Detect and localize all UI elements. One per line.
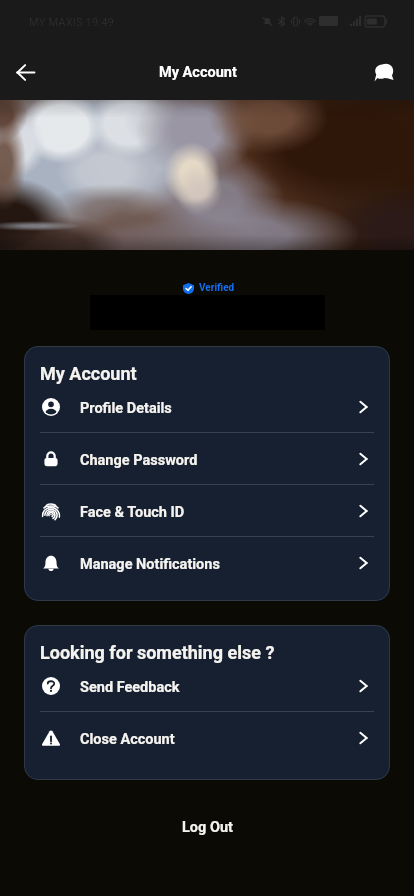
button[interactable]: Change Password [24,433,390,484]
staticText: My Account [159,64,237,81]
staticText: My Account [40,363,137,384]
button[interactable]: Close Account [24,712,390,763]
staticText: Profile Details [80,400,172,417]
staticText: MY MAXIS 19:49 [29,16,115,29]
button[interactable]: Send Feedback [24,660,390,711]
staticText: Manage Notifications [80,556,220,573]
staticText: Close Account [80,731,175,748]
button[interactable]: Face & Touch ID [24,485,390,536]
button[interactable]: Profile Details [24,381,390,432]
button[interactable]: Log Out [0,811,414,840]
button[interactable]: Chat [362,50,406,94]
staticText: Looking for something else ? [40,642,275,663]
staticText: Log Out [182,819,233,836]
button[interactable]: Back [1,48,49,96]
staticText: Send Feedback [80,679,180,696]
staticText: Verified [199,282,235,294]
staticText: Change Password [80,452,198,469]
staticText: Face & Touch ID [80,504,185,521]
button[interactable]: Manage Notifications [24,537,390,588]
